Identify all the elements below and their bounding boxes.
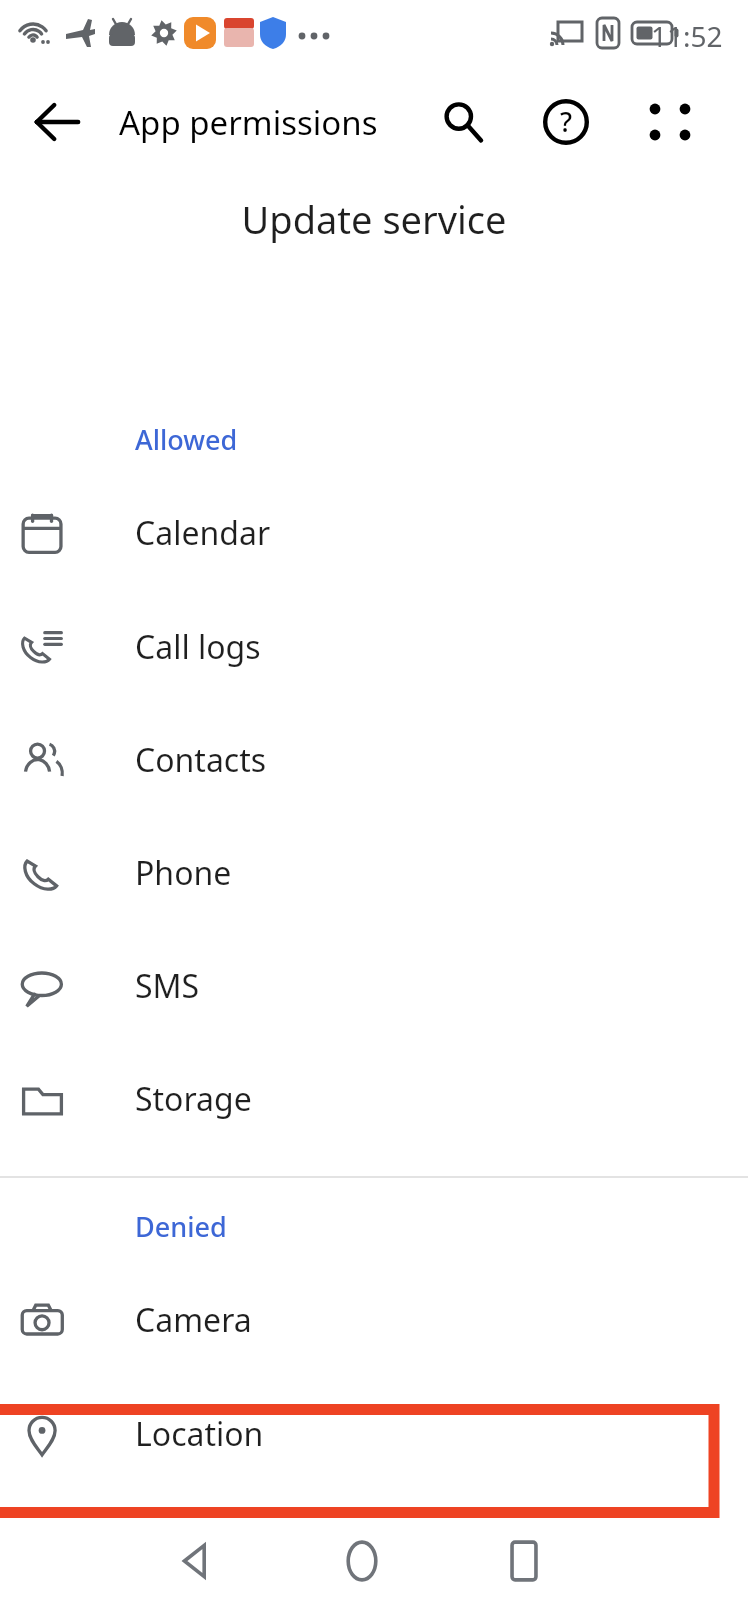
staticText: Update service xyxy=(0,193,748,245)
button[interactable]: Search xyxy=(430,89,496,155)
staticText: Location xyxy=(135,1412,264,1456)
button[interactable]: Back xyxy=(160,1526,230,1596)
button[interactable]: Phone xyxy=(0,816,748,930)
staticText: Storage xyxy=(135,1077,252,1121)
button[interactable]: Contacts xyxy=(0,703,748,817)
button[interactable]: SMS xyxy=(0,929,748,1043)
button[interactable]: Location xyxy=(0,1377,748,1491)
button[interactable]: Navigate up xyxy=(23,88,91,156)
staticText: Calendar xyxy=(135,511,271,555)
staticText: Allowed xyxy=(135,421,238,458)
staticText: Call logs xyxy=(135,625,261,669)
staticText: App permissions xyxy=(119,100,378,145)
staticText: Denied xyxy=(135,1208,227,1245)
button[interactable]: Home xyxy=(327,1526,397,1596)
button[interactable]: Call logs xyxy=(0,590,748,704)
button[interactable]: Help xyxy=(533,89,599,155)
staticText: 11:52 xyxy=(651,17,723,55)
button[interactable]: Camera xyxy=(0,1263,748,1377)
staticText: Camera xyxy=(135,1298,252,1342)
staticText: Contacts xyxy=(135,738,267,782)
staticText: SMS xyxy=(135,964,200,1008)
button[interactable]: Storage xyxy=(0,1042,748,1156)
staticText: Phone xyxy=(135,851,232,895)
staticText: ? xyxy=(560,103,573,140)
button[interactable]: Calendar xyxy=(0,476,748,590)
button[interactable]: Recent apps xyxy=(489,1526,559,1596)
button[interactable]: More options xyxy=(637,89,703,155)
